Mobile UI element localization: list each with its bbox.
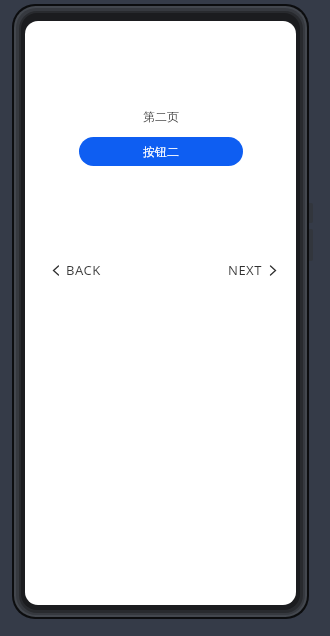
staticText: NEXT: [228, 261, 262, 279]
staticText: 第二页: [143, 109, 179, 124]
button[interactable]: 按钮二: [79, 137, 243, 166]
staticText: BACK: [66, 261, 101, 279]
button[interactable]: NEXT: [228, 261, 277, 279]
staticText: 按钮二: [143, 144, 179, 159]
button[interactable]: BACK: [52, 261, 101, 279]
